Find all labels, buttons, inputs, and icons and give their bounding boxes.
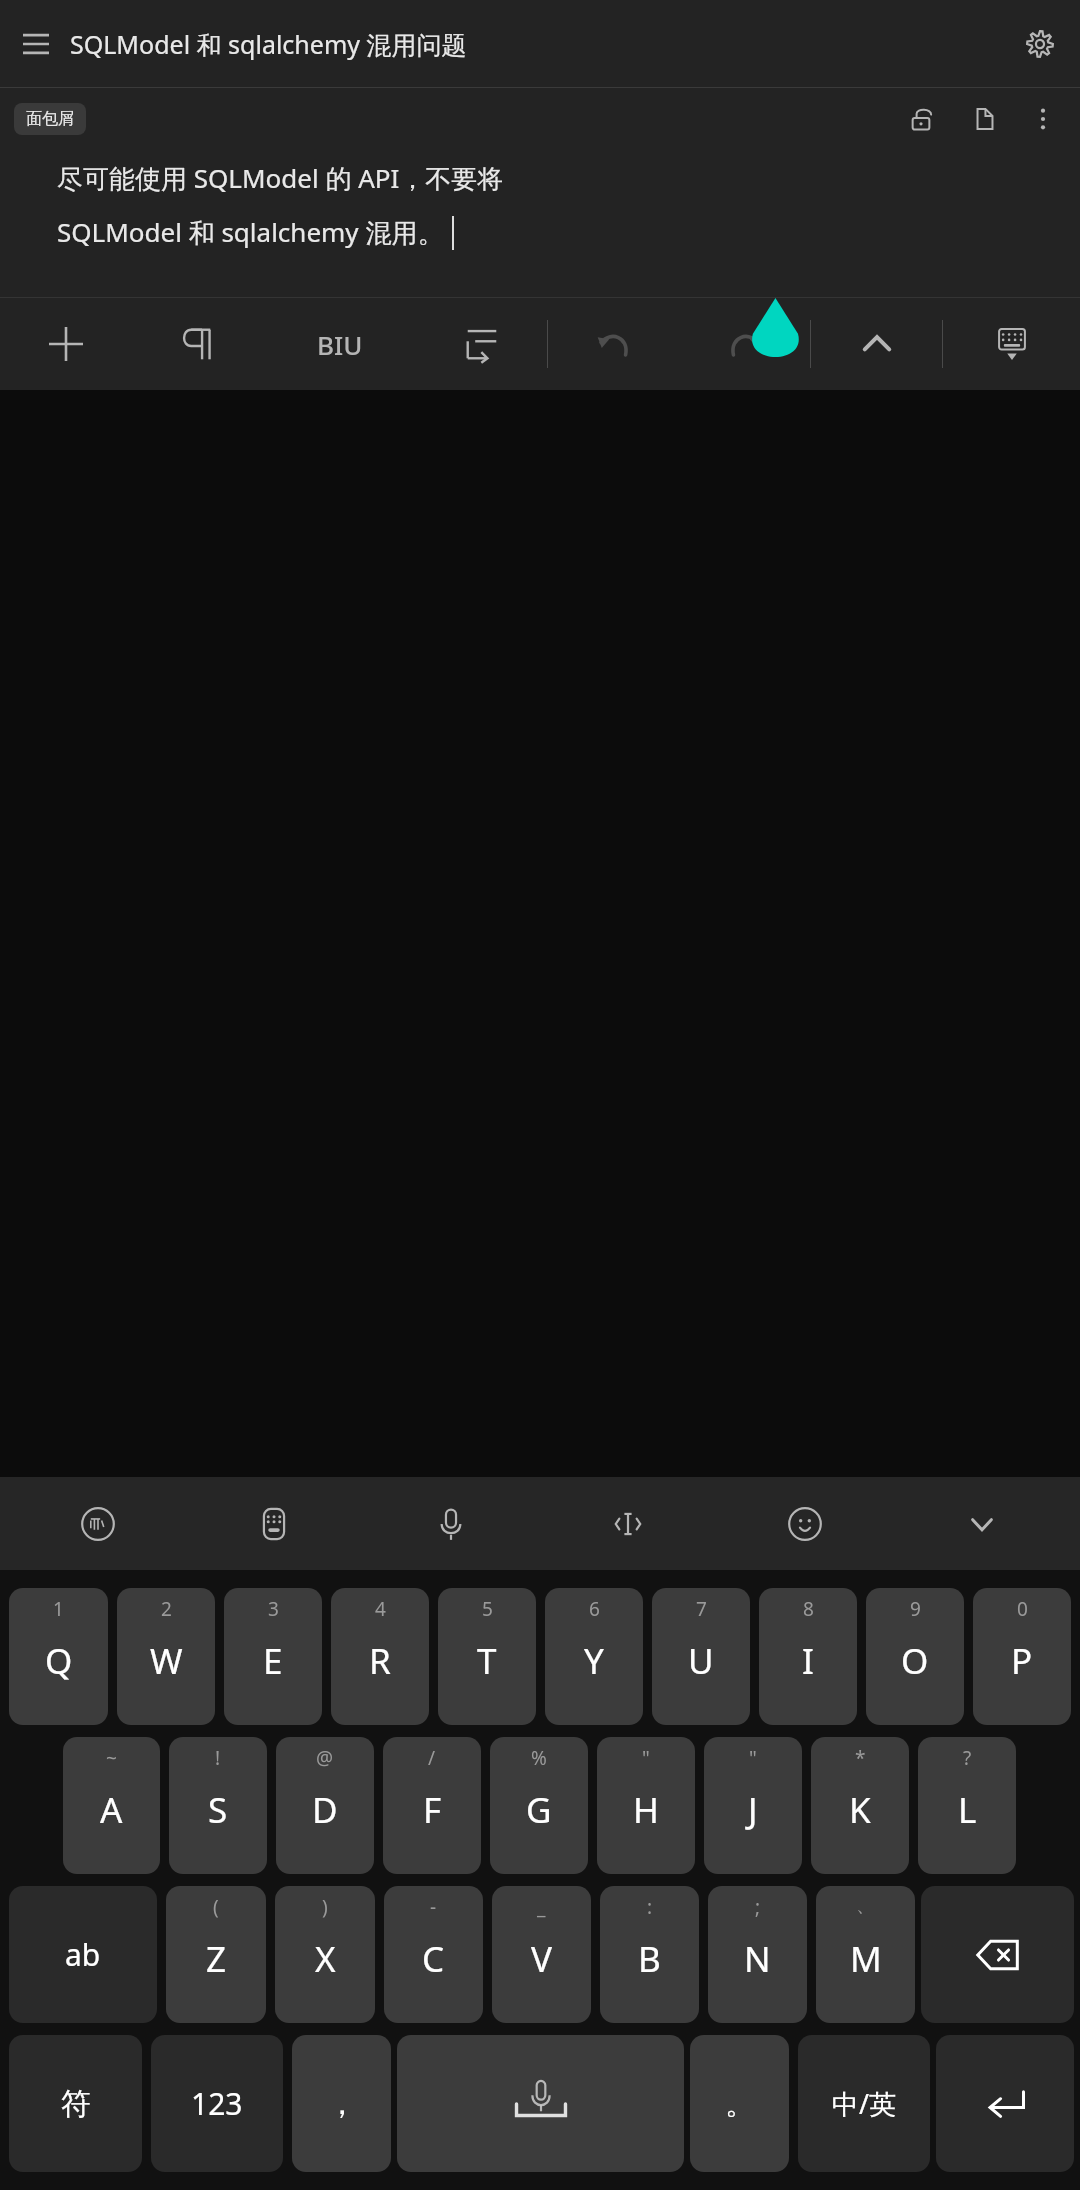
button[interactable]: ! bbox=[169, 1737, 267, 1874]
button[interactable]: Enter bbox=[936, 2035, 1074, 2172]
button[interactable]: " bbox=[597, 1737, 695, 1874]
button[interactable]: Bold italic underline bbox=[264, 298, 416, 390]
staticText: ? bbox=[963, 1745, 972, 1771]
button[interactable]: Move cursor bbox=[539, 1477, 716, 1570]
button[interactable]: Menu bbox=[8, 16, 64, 72]
staticText: N bbox=[744, 1935, 771, 1983]
button[interactable]: ; bbox=[708, 1886, 807, 2023]
staticText: V bbox=[531, 1935, 553, 1983]
button[interactable]: Space bbox=[397, 2035, 684, 2172]
button[interactable]: Redo bbox=[679, 298, 810, 390]
button[interactable]: Keyboard layout bbox=[186, 1477, 362, 1570]
staticText: 123 bbox=[191, 2083, 243, 2124]
button[interactable]: Insert bbox=[0, 298, 132, 390]
button[interactable]: * bbox=[811, 1737, 909, 1874]
button[interactable]: ? bbox=[918, 1737, 1016, 1874]
staticText: % bbox=[531, 1745, 547, 1771]
button[interactable]: Voice input bbox=[362, 1477, 539, 1570]
staticText: 8 bbox=[803, 1596, 814, 1622]
staticText: _ bbox=[537, 1894, 546, 1920]
button[interactable]: Paragraph style bbox=[132, 298, 264, 390]
staticText: J bbox=[748, 1786, 758, 1834]
button[interactable]: Unlock bbox=[898, 96, 944, 142]
staticText: 中/英 bbox=[832, 2085, 897, 2122]
staticText: F bbox=[423, 1786, 442, 1834]
button[interactable]: Settings bbox=[1012, 16, 1068, 72]
staticText: @ bbox=[316, 1745, 334, 1771]
button[interactable]: Collapse bbox=[811, 298, 942, 390]
staticText: : bbox=[647, 1894, 653, 1920]
staticText: 2 bbox=[161, 1596, 172, 1622]
button[interactable]: ( bbox=[166, 1886, 266, 2023]
staticText: C bbox=[422, 1935, 445, 1983]
staticText: D bbox=[312, 1786, 338, 1834]
button[interactable]: Undo bbox=[548, 298, 679, 390]
button[interactable]: - bbox=[384, 1886, 483, 2023]
button[interactable]: Hide keyboard bbox=[943, 298, 1080, 390]
staticText: ) bbox=[322, 1894, 328, 1920]
staticText: H bbox=[633, 1786, 659, 1834]
button[interactable]: Emoji bbox=[716, 1477, 893, 1570]
button[interactable]: / bbox=[383, 1737, 481, 1874]
button[interactable]: 2 bbox=[117, 1588, 215, 1725]
button[interactable]: ~ bbox=[63, 1737, 160, 1874]
staticText: A bbox=[100, 1786, 123, 1834]
button[interactable]: ， bbox=[292, 2035, 391, 2172]
staticText: * bbox=[855, 1745, 866, 1771]
button[interactable]: 1 bbox=[9, 1588, 108, 1725]
staticText: G bbox=[526, 1786, 552, 1834]
staticText: 3 bbox=[268, 1596, 279, 1622]
button[interactable]: 符 bbox=[9, 2035, 142, 2172]
staticText: U bbox=[688, 1637, 714, 1685]
button[interactable]: 8 bbox=[759, 1588, 857, 1725]
button[interactable]: : bbox=[600, 1886, 699, 2023]
button[interactable]: ) bbox=[275, 1886, 375, 2023]
staticText: E bbox=[263, 1637, 283, 1685]
button[interactable]: 、 bbox=[816, 1886, 915, 2023]
button[interactable]: More options bbox=[1020, 96, 1066, 142]
staticText: Q bbox=[45, 1637, 73, 1685]
button[interactable]: 7 bbox=[652, 1588, 750, 1725]
button[interactable]: Backspace bbox=[921, 1886, 1074, 2023]
button[interactable]: _ bbox=[492, 1886, 591, 2023]
staticText: - bbox=[430, 1894, 437, 1920]
button[interactable]: Document bbox=[962, 96, 1008, 142]
staticText: 面包屑 bbox=[26, 109, 74, 129]
staticText: 1 bbox=[53, 1596, 64, 1622]
staticText: 、 bbox=[856, 1894, 875, 1918]
button[interactable]: 6 bbox=[545, 1588, 643, 1725]
staticText: 9 bbox=[910, 1596, 921, 1622]
staticText: T bbox=[477, 1637, 497, 1685]
button[interactable]: Input method bbox=[10, 1477, 186, 1570]
staticText: 4 bbox=[375, 1596, 386, 1622]
button[interactable]: 4 bbox=[331, 1588, 429, 1725]
staticText: X bbox=[315, 1935, 336, 1983]
button[interactable]: 123 bbox=[151, 2035, 283, 2172]
button[interactable]: ab bbox=[9, 1886, 157, 2023]
button[interactable]: 。 bbox=[690, 2035, 789, 2172]
staticText: ab bbox=[65, 1934, 101, 1975]
staticText: SQLModel 和 sqlalchemy 混用问题 bbox=[70, 27, 1012, 61]
button[interactable]: 3 bbox=[224, 1588, 322, 1725]
button[interactable]: 中/英 bbox=[798, 2035, 930, 2172]
staticText: ， bbox=[327, 2085, 357, 2123]
staticText: " bbox=[642, 1745, 650, 1771]
staticText: W bbox=[150, 1637, 183, 1685]
button[interactable]: " bbox=[704, 1737, 802, 1874]
staticText: B bbox=[638, 1935, 661, 1983]
button[interactable]: Hide keyboard bbox=[893, 1477, 1070, 1570]
button[interactable]: Indent bbox=[416, 298, 547, 390]
button[interactable]: 9 bbox=[866, 1588, 964, 1725]
staticText: ! bbox=[215, 1745, 221, 1771]
staticText: ~ bbox=[106, 1745, 117, 1771]
button[interactable]: 5 bbox=[438, 1588, 536, 1725]
staticText: Z bbox=[206, 1935, 227, 1983]
button[interactable]: 0 bbox=[973, 1588, 1071, 1725]
button[interactable]: % bbox=[490, 1737, 588, 1874]
staticText: / bbox=[428, 1745, 436, 1771]
button[interactable]: @ bbox=[276, 1737, 374, 1874]
staticText: M bbox=[850, 1935, 882, 1983]
staticText: 符 bbox=[61, 2085, 91, 2123]
staticText: 尽可能使用 SQLModel 的 API，不要将 bbox=[57, 160, 504, 196]
button[interactable]: 面包屑 bbox=[14, 103, 86, 135]
